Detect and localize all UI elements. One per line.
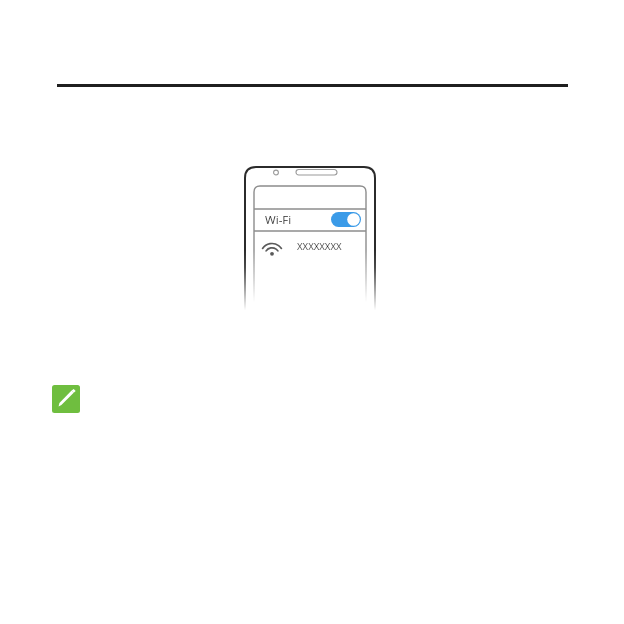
- button[interactable]: Note: [52, 385, 80, 413]
- button[interactable]: Phone showing Wi-Fi settings: [236, 160, 384, 375]
